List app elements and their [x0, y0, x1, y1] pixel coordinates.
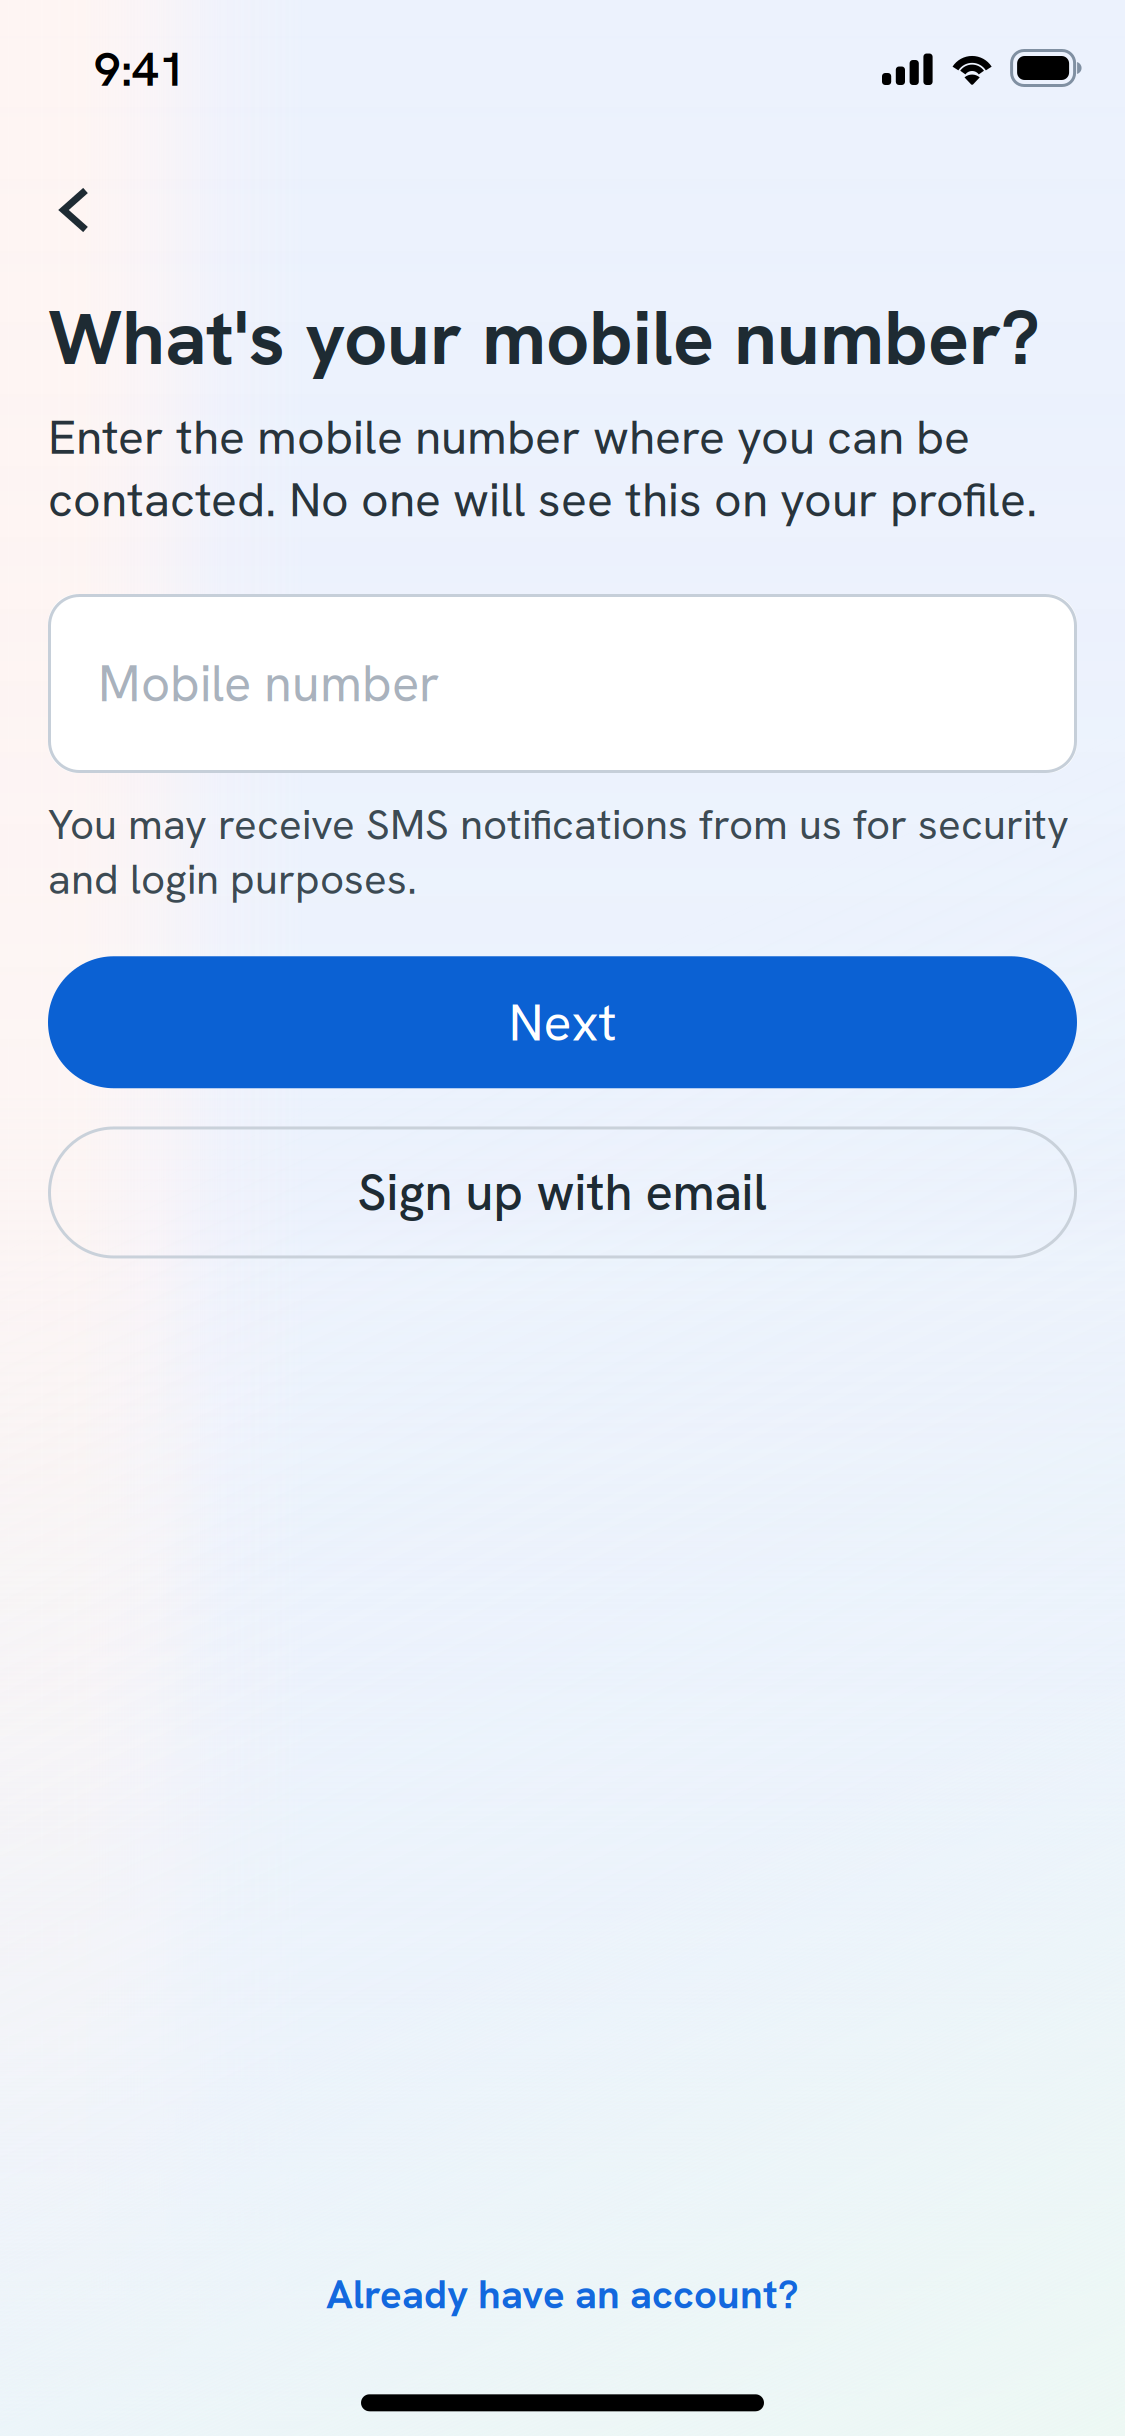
staticText: You may receive SMS notifications from u…	[48, 797, 1069, 907]
button[interactable]: Next	[0, 956, 1125, 1088]
staticText: Mobile number	[98, 650, 440, 716]
button[interactable]: Sign up with email	[0, 1126, 1125, 1258]
button[interactable]: Already have an account?	[0, 2250, 1125, 2338]
staticText: Enter the mobile number where you can be…	[48, 406, 1038, 531]
staticText: Next	[508, 988, 616, 1056]
staticText: 9:41	[94, 38, 186, 100]
button[interactable]: Mobile number	[0, 594, 1125, 773]
staticText: Sign up with email	[357, 1159, 767, 1225]
staticText: What's your mobile number?	[48, 288, 1040, 387]
staticText: Already have an account?	[326, 2268, 799, 2320]
button[interactable]: Back	[0, 187, 119, 233]
